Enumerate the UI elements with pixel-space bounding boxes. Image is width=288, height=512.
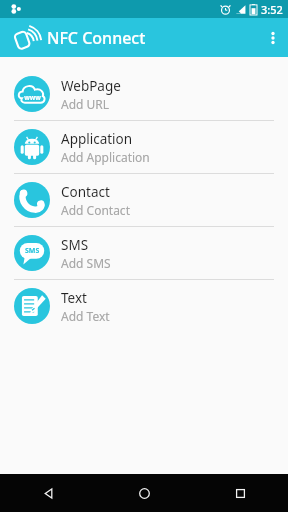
button[interactable]: SMS xyxy=(0,227,288,279)
button[interactable]: Text xyxy=(0,280,288,332)
staticText: Contact xyxy=(61,183,110,201)
staticText: WebPage xyxy=(61,77,121,95)
staticText: Application xyxy=(61,130,133,148)
staticText: Add URL xyxy=(61,96,110,112)
staticText: Add Text xyxy=(61,308,110,324)
button[interactable]: Recent apps xyxy=(192,474,288,512)
staticText: SMS xyxy=(61,236,89,254)
staticText: Add SMS xyxy=(61,255,111,271)
button[interactable]: Contact xyxy=(0,174,288,226)
staticText: Text xyxy=(61,289,87,307)
button[interactable]: Application xyxy=(0,121,288,173)
staticText: Add Contact xyxy=(61,202,130,218)
button[interactable]: Back xyxy=(0,474,96,512)
button[interactable]: www xyxy=(0,68,288,120)
staticText: SMS xyxy=(25,246,40,256)
staticText: 3:52 xyxy=(261,2,283,17)
button[interactable]: More options xyxy=(258,18,288,57)
staticText: NFC Connect xyxy=(47,27,146,49)
staticText: Add Application xyxy=(61,149,150,165)
staticText: www xyxy=(24,93,41,102)
button[interactable]: Home xyxy=(96,474,192,512)
